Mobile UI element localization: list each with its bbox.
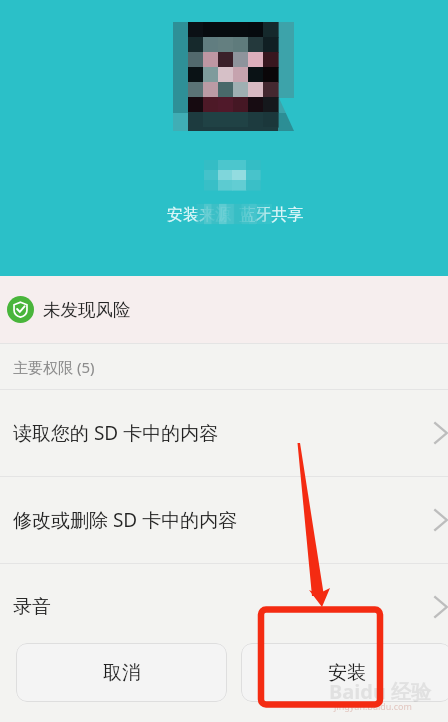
button[interactable]: 取消 [16,643,227,702]
staticText: 读取您的 SD 卡中的内容 [13,420,433,446]
button[interactable]: 修改或删除 SD 卡中的内容 [0,477,448,563]
staticText: 取消 [103,661,141,685]
staticText: 安装来源 蓝牙共享 [167,203,304,225]
other: No risk found [7,296,34,323]
button[interactable]: 读取您的 SD 卡中的内容 [0,390,448,476]
button[interactable]: 录音 [0,564,448,650]
staticText: 未发现风险 [43,299,131,321]
staticText: 录音 [13,595,433,619]
staticText: 主要权限 (5) [13,357,95,377]
staticText: Baidu 经验 [329,678,432,705]
button[interactable]: 安装 [241,643,448,702]
staticText: 修改或删除 SD 卡中的内容 [13,507,433,533]
button[interactable]: No risk found [0,276,448,343]
staticText: jingyan.baidu.com [334,700,412,712]
staticText: 安装 [328,661,366,685]
